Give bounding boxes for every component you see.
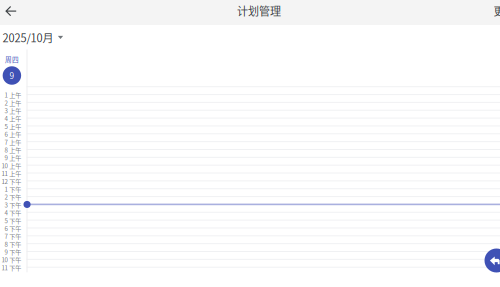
staticText: 上午 [9,169,21,178]
staticText: 11 [2,169,8,178]
staticText: 8 [5,145,8,154]
staticText: 上午 [9,98,21,107]
staticText: 下午 [9,200,21,209]
staticText: 下午 [9,208,21,217]
button[interactable]: Back [0,0,21,24]
staticText: 下午 [9,255,21,264]
staticText: 1 [5,185,8,193]
button[interactable]: 更多 [493,0,500,23]
staticText: 10 [2,255,8,264]
staticText: 上午 [9,106,21,115]
staticText: 上午 [9,122,21,131]
staticText: 6 [5,130,8,139]
staticText: 上午 [9,153,21,162]
staticText: 8 [5,240,8,248]
staticText: 12 [2,177,8,186]
staticText: 计划管理 [237,3,281,19]
staticText: 9 [9,69,14,81]
button[interactable]: Back to today [484,248,500,272]
staticText: 3 [5,106,8,115]
staticText: 1 [5,90,8,99]
staticText: 上午 [9,137,21,146]
button[interactable]: 周四 [0,54,24,85]
staticText: 上午 [9,130,21,139]
staticText: 下午 [9,263,21,272]
button[interactable]: 2025/10月 [2,30,64,44]
staticText: 5 [5,122,8,131]
staticText: 下午 [9,247,21,256]
staticText: 下午 [9,216,21,225]
staticText: 下午 [9,224,21,233]
staticText: 2 [5,98,8,107]
staticText: 9 [5,247,8,256]
staticText: 6 [5,224,8,233]
staticText: 上午 [9,90,21,99]
staticText: 5 [5,216,8,225]
staticText: 9 [5,153,8,162]
staticText: 下午 [9,192,21,201]
staticText: 上午 [9,114,21,123]
staticText: 4 [5,114,8,123]
staticText: 下午 [9,185,21,193]
staticText: 上午 [9,145,21,154]
staticText: 4 [5,208,8,217]
staticText: 下午 [9,177,21,186]
staticText: 2025/10月 [2,29,53,45]
staticText: 3 [5,200,8,209]
staticText: 2 [5,192,8,201]
staticText: 7 [5,232,8,241]
staticText: 11 [2,263,8,272]
staticText: 周四 [5,54,19,64]
staticText: 7 [5,137,8,146]
staticText: 上午 [9,161,21,170]
staticText: 10 [2,161,8,170]
staticText: 下午 [9,232,21,241]
staticText: 下午 [9,240,21,248]
staticText: 更多 [493,3,500,19]
